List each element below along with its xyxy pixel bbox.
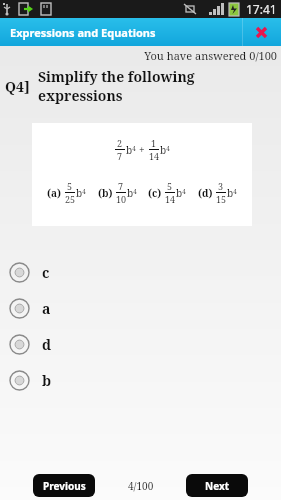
staticText: b [42, 371, 52, 390]
staticText: Simplify the following expressions [38, 67, 281, 105]
staticText: 3 [218, 180, 224, 192]
staticText: b4 [176, 186, 186, 200]
staticText: 10 [116, 193, 127, 205]
button[interactable]: d [0, 326, 281, 362]
staticText: 17:41 [246, 1, 277, 17]
staticText: c [42, 263, 50, 282]
button[interactable]: Close [242, 18, 281, 46]
staticText: 5 [67, 180, 73, 192]
staticText: (b) [98, 186, 113, 200]
button[interactable]: a [0, 290, 281, 326]
staticText: b4 [227, 186, 237, 200]
staticText: 25 [65, 193, 76, 205]
staticText: b4 [127, 186, 137, 200]
staticText: Expressions and Equations [10, 25, 156, 40]
staticText: + [139, 143, 145, 157]
button[interactable]: Previous [33, 474, 95, 497]
staticText: Next [205, 479, 230, 493]
staticText: 15 [216, 193, 227, 205]
staticText: Previous [43, 479, 86, 493]
staticText: 7 [118, 180, 124, 192]
staticText: (d) [198, 186, 213, 200]
staticText: (a) [47, 186, 62, 200]
staticText: d [42, 335, 52, 354]
staticText: 2 [117, 137, 123, 149]
button[interactable]: b [0, 362, 281, 398]
staticText: 14 [165, 193, 176, 205]
staticText: 14 [149, 150, 160, 162]
staticText: 5 [167, 180, 173, 192]
staticText: a [42, 299, 51, 318]
staticText: 7 [117, 150, 123, 162]
button[interactable]: c [0, 254, 281, 290]
staticText: b4 [160, 143, 170, 157]
staticText: Q4] [5, 77, 30, 96]
staticText: 1 [151, 137, 157, 149]
button[interactable]: Next [186, 474, 248, 497]
staticText: You have answered 0/100 [0, 48, 277, 63]
staticText: 4/100 [128, 479, 154, 493]
staticText: b4 [126, 143, 136, 157]
staticText: (c) [148, 186, 162, 200]
staticText: b4 [76, 186, 86, 200]
